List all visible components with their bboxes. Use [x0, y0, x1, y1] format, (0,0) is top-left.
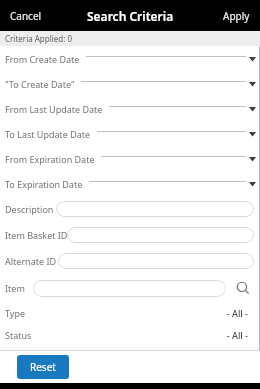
staticText: From Expiration Date — [5, 153, 95, 165]
button[interactable]: Search item — [233, 278, 253, 298]
button[interactable]: Description — [0, 196, 260, 222]
button[interactable]: Item Basket ID — [0, 222, 260, 248]
button[interactable]: Cancel — [0, 3, 52, 29]
staticText: Cancel — [10, 9, 42, 23]
staticText: From Create Date — [5, 53, 80, 65]
button[interactable]: Alternate ID — [0, 248, 260, 274]
button[interactable] — [33, 280, 226, 297]
button[interactable]: Type — [0, 302, 260, 324]
staticText: Description — [5, 203, 54, 215]
button[interactable]: From Expiration Date — [0, 146, 260, 171]
staticText: - All - — [226, 329, 248, 341]
staticText: To Last Update Date — [5, 128, 91, 140]
staticText: Type — [5, 307, 26, 319]
staticText: - All - — [226, 307, 248, 319]
staticText: Status — [5, 329, 32, 341]
staticText: Search Criteria — [87, 8, 174, 24]
staticText: "To Create Date" — [5, 78, 75, 90]
button[interactable]: From Create Date — [0, 46, 260, 71]
staticText: Apply — [223, 9, 250, 23]
staticText: Reset — [30, 360, 56, 374]
staticText: Item Basket ID — [5, 229, 68, 241]
button[interactable]: Apply — [213, 3, 260, 29]
button[interactable]: From Last Update Date — [0, 96, 260, 121]
button[interactable]: To Expiration Date — [0, 171, 260, 196]
button[interactable]: To Last Update Date — [0, 121, 260, 146]
button[interactable]: "To Create Date" — [0, 71, 260, 96]
staticText: From Last Update Date — [5, 103, 103, 115]
staticText: Item — [5, 282, 25, 294]
staticText: To Expiration Date — [5, 178, 83, 190]
staticText: Criteria Applied: 0 — [5, 33, 73, 44]
button[interactable]: Reset — [17, 355, 69, 379]
staticText: Alternate ID — [5, 255, 57, 267]
button[interactable]: Status — [0, 324, 260, 346]
